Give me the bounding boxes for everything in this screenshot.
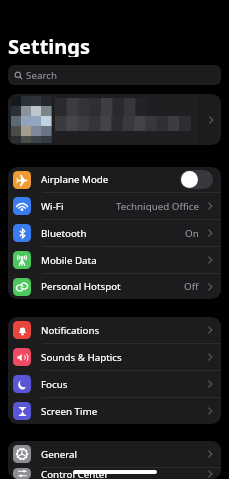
- button[interactable]: [8, 94, 221, 145]
- button[interactable]: Screen Time: [8, 398, 221, 424]
- button[interactable]: Airplane Mode: [8, 167, 221, 192]
- button[interactable]: Sounds & Haptics: [8, 344, 221, 370]
- button[interactable]: General: [8, 441, 221, 467]
- button[interactable]: Personal Hotspot: [8, 274, 221, 299]
- staticText: On: [185, 227, 199, 240]
- button[interactable]: Focus: [8, 371, 221, 397]
- staticText: Search: [26, 69, 58, 82]
- staticText: Screen Time: [41, 405, 98, 418]
- staticText: Off: [184, 280, 199, 293]
- button[interactable]: Mobile Data: [8, 247, 221, 273]
- staticText: Mobile Data: [41, 254, 97, 267]
- button[interactable]: Airplane Mode toggle: [180, 170, 213, 189]
- staticText: Control Center: [41, 468, 109, 479]
- staticText: Wi-Fi: [41, 200, 64, 213]
- button[interactable]: Control Center: [8, 468, 221, 479]
- staticText: Focus: [41, 378, 68, 391]
- button[interactable]: Bluetooth: [8, 220, 221, 246]
- button[interactable]: Wi-Fi: [8, 193, 221, 219]
- staticText: Techniqued Office: [116, 200, 199, 213]
- staticText: Airplane Mode: [41, 173, 109, 186]
- staticText: Bluetooth: [41, 227, 87, 240]
- button[interactable]: Search: [8, 65, 221, 85]
- button[interactable]: Notifications: [8, 317, 221, 343]
- staticText: Personal Hotspot: [41, 280, 121, 293]
- staticText: Settings: [8, 33, 90, 57]
- staticText: Notifications: [41, 324, 100, 337]
- staticText: Sounds & Haptics: [41, 351, 122, 364]
- staticText: General: [41, 448, 78, 461]
